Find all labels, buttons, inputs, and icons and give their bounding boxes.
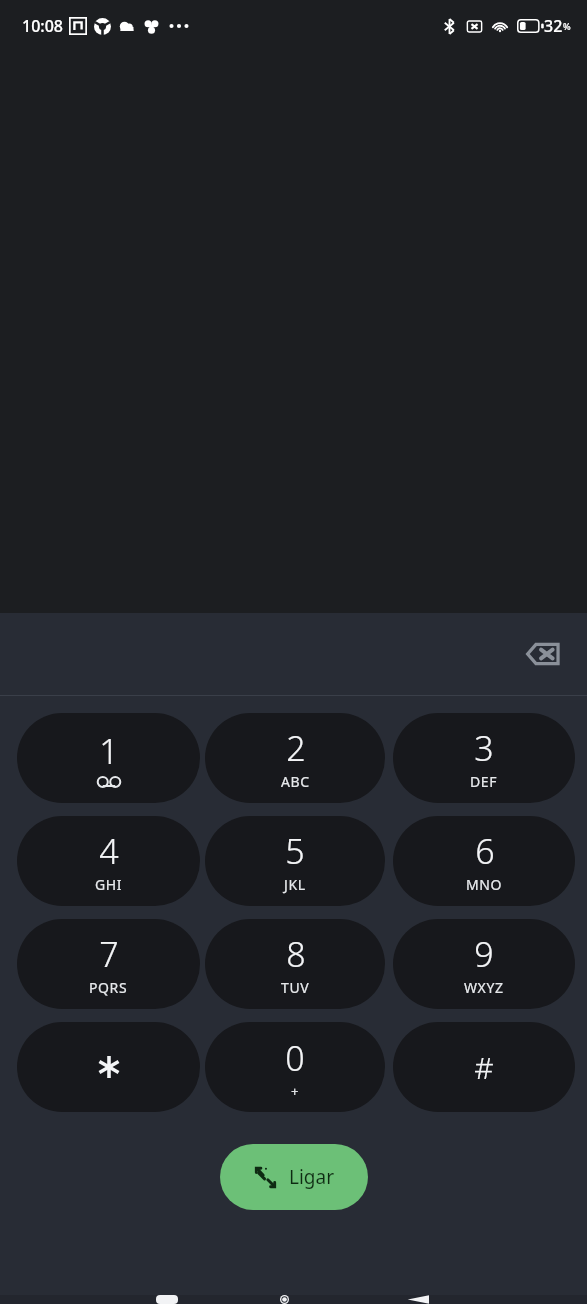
staticText: 9 — [474, 931, 494, 977]
staticText: 1 — [99, 728, 119, 774]
staticText: GHI — [95, 875, 123, 894]
button[interactable]: 5 — [205, 816, 385, 906]
staticText: 7 — [99, 931, 119, 977]
staticText: % — [563, 20, 571, 32]
staticText: 2 — [286, 725, 306, 771]
staticText: + — [291, 1082, 299, 1100]
staticText: 3 — [474, 725, 494, 771]
button[interactable]: 1 — [17, 713, 200, 803]
staticText: # — [474, 1047, 494, 1088]
button[interactable]: 7 — [17, 919, 200, 1009]
staticText: 4 — [99, 828, 119, 874]
staticText: JKL — [284, 875, 306, 894]
staticText: Ligar — [289, 1164, 335, 1190]
staticText: PQRS — [89, 978, 128, 997]
button[interactable]: 9 — [393, 919, 575, 1009]
staticText: MNO — [466, 875, 503, 894]
staticText: 0 — [285, 1035, 305, 1081]
staticText: WXYZ — [464, 978, 504, 997]
staticText: 10:08 — [22, 15, 63, 37]
staticText: 32 — [544, 15, 563, 37]
button[interactable]: 0 — [205, 1022, 385, 1112]
button[interactable]: Back — [396, 1295, 440, 1304]
button[interactable]: 4 — [17, 816, 200, 906]
staticText: ABC — [281, 772, 310, 791]
staticText: 6 — [475, 828, 495, 874]
button[interactable]: Backspace — [517, 628, 569, 680]
button[interactable]: 6 — [393, 816, 575, 906]
button[interactable]: 3 — [393, 713, 575, 803]
button[interactable]: Home — [272, 1295, 316, 1304]
button[interactable]: Ligar — [220, 1144, 368, 1210]
staticText: 8 — [286, 931, 306, 977]
staticText: DEF — [470, 772, 498, 791]
staticText: 5 — [285, 828, 305, 874]
button[interactable]: 2 — [205, 713, 385, 803]
button[interactable]: 8 — [205, 919, 385, 1009]
button[interactable]: # — [393, 1022, 575, 1112]
button[interactable]: Recents — [145, 1295, 189, 1304]
button[interactable] — [17, 1022, 200, 1112]
staticText: TUV — [281, 978, 310, 997]
